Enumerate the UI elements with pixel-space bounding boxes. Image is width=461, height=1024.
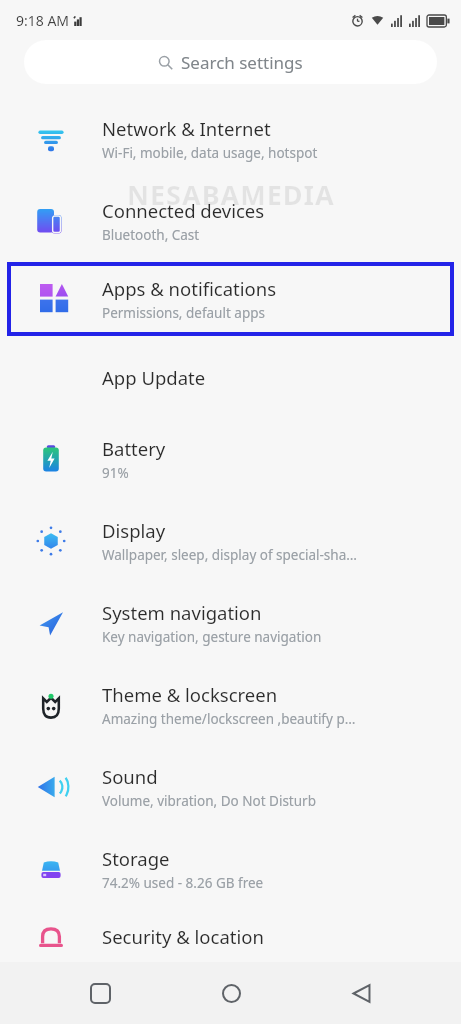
staticText: Key navigation, gesture navigation	[102, 628, 322, 646]
button[interactable]: Connected devices	[0, 180, 461, 262]
button[interactable]: Sound	[0, 746, 461, 828]
staticText: Theme & lockscreen	[102, 682, 278, 707]
staticText: Bluetooth, Cast	[102, 226, 200, 244]
button[interactable]: Theme & lockscreen	[0, 664, 461, 746]
button[interactable]: System navigation	[0, 582, 461, 664]
button[interactable]: Search settings	[24, 40, 437, 84]
staticText: Battery	[102, 436, 166, 461]
staticText: Wallpaper, sleep, display of special-sha…	[102, 546, 357, 564]
staticText: Connected devices	[102, 198, 265, 223]
staticText: Amazing theme/lockscreen ,beautify p…	[102, 710, 356, 728]
button[interactable]: Display	[0, 500, 461, 582]
button[interactable]: Network & Internet	[0, 98, 461, 180]
staticText: Search settings	[181, 51, 303, 74]
button[interactable]: Storage	[0, 828, 461, 910]
staticText: Apps & notifications	[102, 276, 277, 301]
button[interactable]: App Update	[0, 336, 461, 418]
staticText: Volume, vibration, Do Not Disturb	[102, 792, 316, 810]
staticText: 91%	[102, 464, 129, 482]
staticText: System navigation	[102, 600, 262, 625]
button[interactable]: Apps & notifications	[7, 262, 454, 336]
staticText: Sound	[102, 764, 158, 789]
staticText: Wi-Fi, mobile, data usage, hotspot	[102, 144, 318, 162]
staticText: 9:18 AM	[16, 11, 70, 30]
button[interactable]: Security & location	[0, 910, 461, 962]
staticText: Security & location	[102, 924, 264, 949]
button[interactable]: Home	[200, 962, 262, 1024]
staticText: Storage	[102, 846, 170, 871]
button[interactable]: Back	[330, 962, 392, 1024]
staticText: Permissions, default apps	[102, 304, 265, 322]
staticText: 74.2% used - 8.26 GB free	[102, 874, 264, 892]
staticText: NESABAMEDIA	[127, 176, 335, 213]
staticText: Network & Internet	[102, 116, 271, 141]
button[interactable]: Battery	[0, 418, 461, 500]
staticText: App Update	[102, 365, 206, 390]
button[interactable]: Recents	[69, 962, 131, 1024]
staticText: Display	[102, 518, 166, 543]
